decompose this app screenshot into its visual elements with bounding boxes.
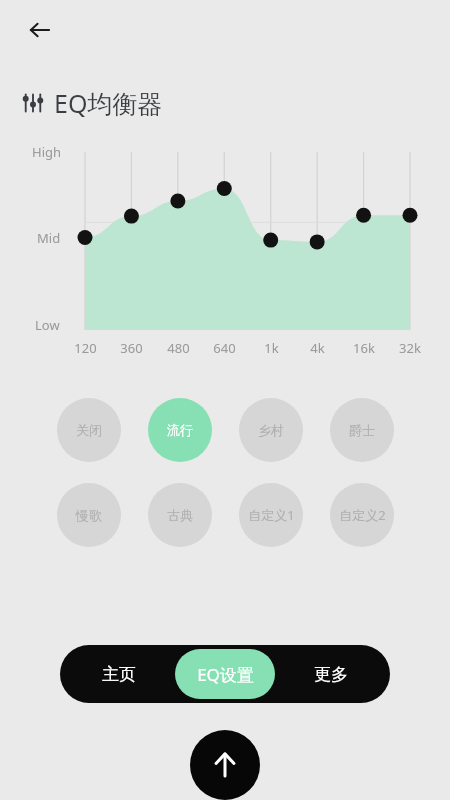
button[interactable]: 自定义2	[330, 483, 394, 547]
staticText: 480	[167, 339, 190, 357]
button[interactable]: Scroll to top	[190, 730, 260, 800]
staticText: 乡村	[258, 422, 284, 438]
staticText: 慢歌	[76, 507, 102, 523]
button[interactable]: EQ设置	[175, 649, 275, 699]
button[interactable]: 自定义1	[239, 483, 303, 547]
staticText: 更多	[314, 664, 348, 685]
button[interactable]: 乡村	[239, 398, 303, 462]
staticText: 360	[120, 339, 143, 357]
staticText: 自定义2	[339, 506, 386, 524]
button[interactable]: 爵士	[330, 398, 394, 462]
staticText: EQ均衡器	[54, 86, 163, 120]
staticText: 关闭	[76, 422, 102, 438]
button[interactable]: 古典	[148, 483, 212, 547]
button[interactable]: 流行	[148, 398, 212, 462]
button[interactable]: 更多	[281, 649, 381, 699]
button[interactable]: 慢歌	[57, 483, 121, 547]
button[interactable]: Back	[18, 8, 62, 52]
staticText: EQ设置	[197, 663, 254, 686]
staticText: 主页	[102, 664, 136, 685]
staticText: Low	[35, 316, 60, 334]
staticText: 32k	[399, 339, 421, 357]
staticText: 640	[213, 339, 236, 357]
staticText: 流行	[167, 422, 193, 438]
button[interactable]: 主页	[69, 649, 169, 699]
staticText: 爵士	[349, 422, 375, 438]
button[interactable]: 关闭	[57, 398, 121, 462]
staticText: Mid	[37, 229, 61, 247]
staticText: 120	[74, 339, 97, 357]
staticText: 古典	[167, 507, 193, 523]
staticText: High	[32, 143, 62, 161]
staticText: 1k	[264, 339, 279, 357]
staticText: 自定义1	[248, 506, 295, 524]
staticText: 16k	[353, 339, 375, 357]
staticText: 4k	[310, 339, 325, 357]
